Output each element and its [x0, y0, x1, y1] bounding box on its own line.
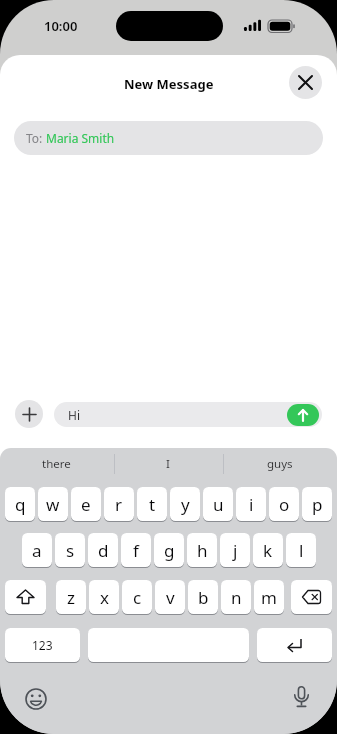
staticText: z — [67, 586, 75, 609]
staticText: u — [213, 493, 224, 516]
button[interactable]: y — [170, 487, 200, 521]
staticText: s — [66, 539, 75, 562]
staticText: r — [115, 493, 123, 516]
staticText: i — [249, 493, 254, 516]
staticText: e — [81, 493, 91, 516]
staticText: l — [299, 539, 304, 562]
button[interactable]: d — [88, 533, 118, 567]
staticText: there — [42, 456, 71, 472]
button[interactable] — [287, 684, 315, 712]
button[interactable]: a — [22, 533, 52, 567]
staticText: h — [197, 539, 208, 562]
button[interactable] — [289, 66, 322, 99]
button[interactable]: q — [5, 487, 35, 521]
button[interactable]: j — [220, 533, 250, 567]
staticText: f — [133, 539, 139, 562]
button[interactable]: z — [56, 580, 86, 614]
button[interactable] — [22, 685, 50, 713]
button[interactable] — [287, 404, 319, 426]
staticText: d — [98, 539, 109, 562]
button[interactable]: 123 — [5, 628, 80, 662]
button[interactable]: h — [187, 533, 217, 567]
button[interactable] — [15, 400, 43, 428]
button[interactable]: i — [236, 487, 266, 521]
staticText: o — [279, 493, 290, 516]
staticText: k — [263, 539, 273, 562]
staticText: p — [312, 493, 323, 516]
button[interactable]: m — [254, 580, 284, 614]
staticText: j — [233, 539, 238, 562]
staticText: y — [181, 493, 190, 516]
button[interactable] — [5, 580, 46, 614]
button[interactable]: s — [55, 533, 85, 567]
button[interactable]: b — [188, 580, 218, 614]
staticText: n — [231, 586, 242, 609]
button[interactable]: o — [269, 487, 299, 521]
staticText: guys — [267, 456, 293, 472]
button[interactable]: Hi — [54, 402, 322, 427]
staticText: I — [166, 456, 170, 472]
staticText: c — [133, 586, 142, 609]
button[interactable]: l — [286, 533, 316, 567]
button[interactable]: there — [0, 453, 112, 475]
staticText: Hi — [68, 407, 80, 423]
button[interactable]: guys — [224, 453, 336, 475]
button[interactable]: f — [121, 533, 151, 567]
button[interactable]: I — [112, 453, 224, 475]
staticText: t — [149, 493, 156, 516]
button[interactable] — [291, 580, 332, 614]
staticText: v — [166, 586, 175, 609]
button[interactable] — [257, 628, 332, 662]
button[interactable]: To: — [14, 121, 323, 155]
staticText: x — [100, 586, 109, 609]
button[interactable]: r — [104, 487, 134, 521]
staticText: a — [32, 539, 42, 562]
staticText: b — [198, 586, 209, 609]
staticText: m — [261, 586, 277, 609]
staticText: To: — [26, 130, 46, 146]
button[interactable]: t — [137, 487, 167, 521]
button[interactable]: e — [71, 487, 101, 521]
button[interactable]: n — [221, 580, 251, 614]
button[interactable]: w — [38, 487, 68, 521]
staticText: q — [15, 493, 26, 516]
button[interactable]: x — [89, 580, 119, 614]
button[interactable]: c — [122, 580, 152, 614]
staticText: Maria Smith — [46, 130, 115, 146]
button[interactable]: p — [302, 487, 332, 521]
staticText: w — [46, 493, 60, 516]
button[interactable]: v — [155, 580, 185, 614]
staticText: 10:00 — [44, 17, 78, 35]
button[interactable] — [88, 628, 249, 662]
button[interactable]: g — [154, 533, 184, 567]
button[interactable]: k — [253, 533, 283, 567]
button[interactable]: u — [203, 487, 233, 521]
staticText: 123 — [32, 637, 53, 653]
staticText: g — [164, 539, 175, 562]
staticText: New Message — [124, 75, 214, 93]
